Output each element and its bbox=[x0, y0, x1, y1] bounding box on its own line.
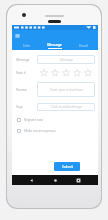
button[interactable]: Rate star bbox=[62, 69, 70, 77]
button[interactable]: Rate star bbox=[73, 69, 81, 77]
button[interactable]: Make me anonymous bbox=[17, 127, 95, 135]
button[interactable]: Message bbox=[37, 55, 95, 64]
button[interactable]: Enter your review here bbox=[37, 82, 95, 97]
staticText: Email bbox=[79, 43, 88, 48]
button[interactable]: Rate star bbox=[84, 69, 92, 77]
staticText: Tags bbox=[16, 105, 23, 109]
button[interactable]: Home bbox=[51, 176, 60, 185]
staticText: Enter your review here bbox=[50, 88, 83, 92]
button[interactable]: Rate star bbox=[40, 69, 48, 77]
button[interactable]: Message bbox=[40, 41, 69, 50]
button[interactable]: Register now bbox=[17, 116, 95, 124]
button[interactable]: Email bbox=[69, 41, 98, 50]
staticText: Register now bbox=[24, 118, 43, 122]
staticText: Submit bbox=[62, 165, 73, 169]
staticText: Message bbox=[60, 58, 73, 62]
button[interactable]: Recent apps bbox=[74, 176, 83, 185]
staticText: Message bbox=[47, 42, 62, 47]
staticText: Info bbox=[23, 43, 30, 48]
button[interactable]: Info bbox=[12, 41, 40, 50]
button[interactable]: Open navigation menu bbox=[15, 33, 20, 38]
staticText: Rate it bbox=[16, 71, 26, 75]
staticText: Make me anonymous bbox=[24, 129, 56, 133]
staticText: Message bbox=[16, 58, 30, 62]
button[interactable]: Click to add/edit tags bbox=[37, 103, 95, 111]
button[interactable]: Rate star bbox=[51, 69, 59, 77]
staticText: Click to add/edit tags bbox=[51, 105, 82, 109]
staticText: Review bbox=[16, 88, 27, 92]
button[interactable]: Back bbox=[27, 176, 36, 185]
button[interactable]: Submit bbox=[54, 162, 80, 171]
